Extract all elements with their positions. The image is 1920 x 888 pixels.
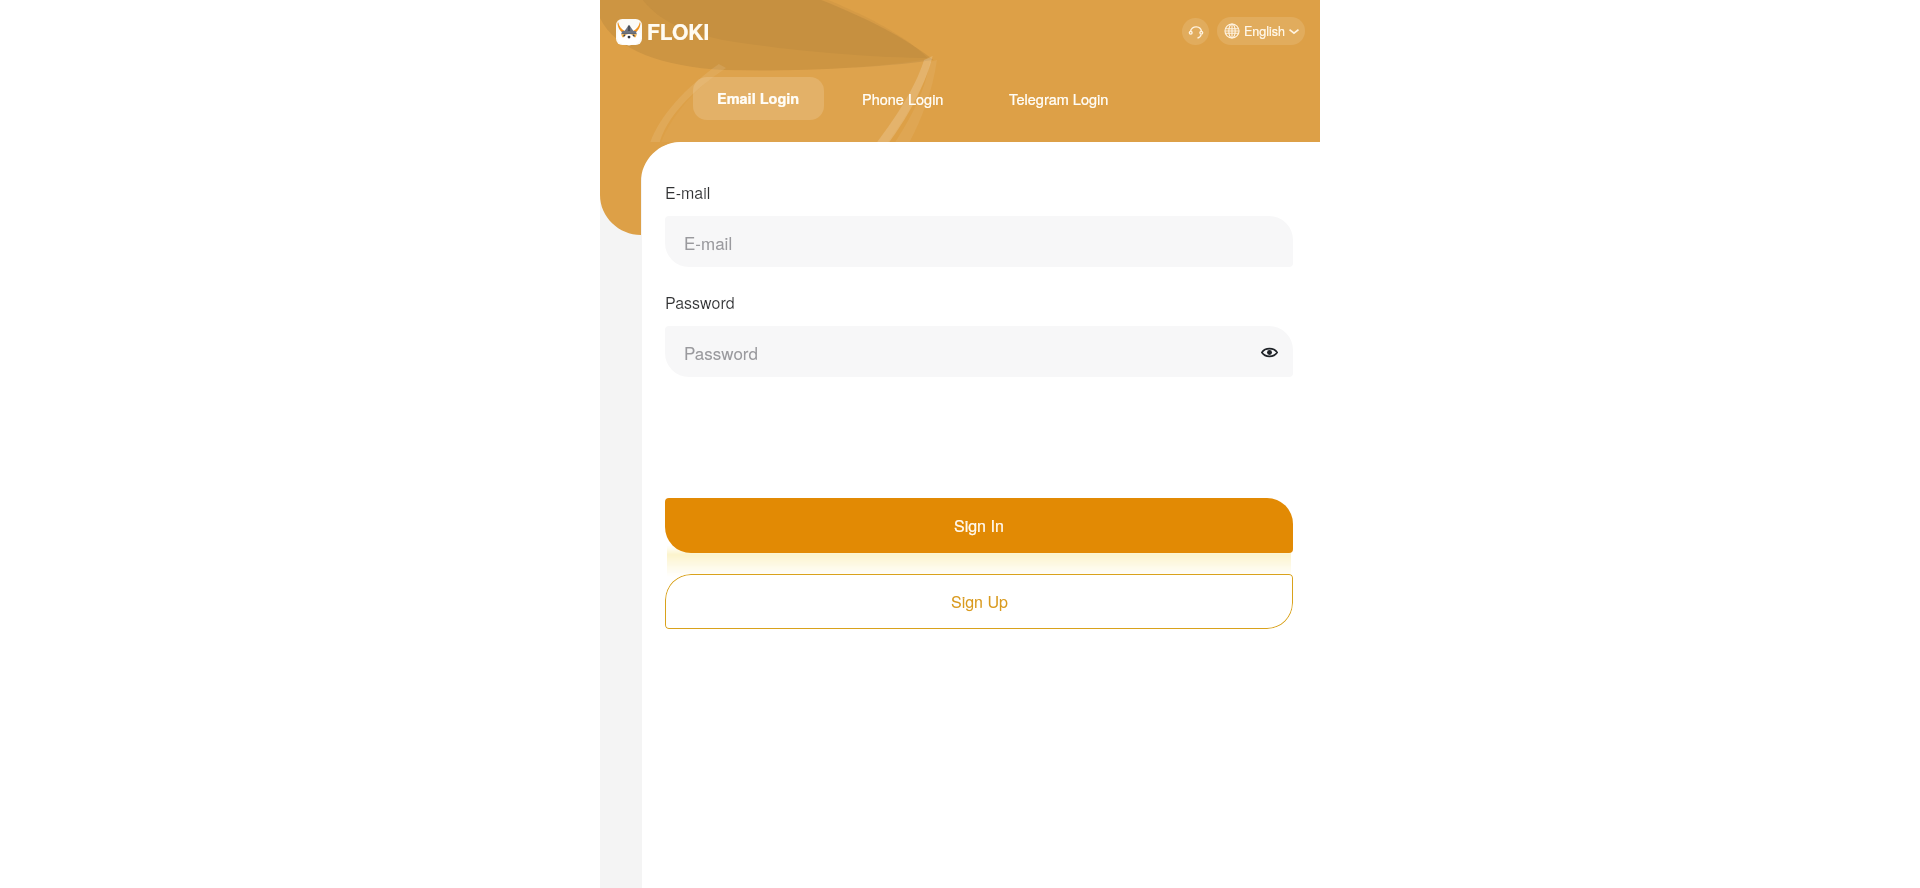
staticText: English bbox=[1244, 22, 1285, 40]
button[interactable]: Sign Up bbox=[665, 574, 1293, 629]
staticText: Password bbox=[684, 340, 758, 364]
staticText: FLOKI bbox=[647, 16, 710, 46]
staticText: Sign Up bbox=[951, 590, 1008, 613]
button[interactable]: Telegram Login bbox=[985, 77, 1133, 120]
staticText: Password bbox=[665, 291, 735, 314]
button[interactable]: Email Login bbox=[693, 77, 824, 120]
button[interactable]: Show password bbox=[1258, 341, 1280, 363]
staticText: Email Login bbox=[717, 88, 800, 109]
staticText: E-mail bbox=[684, 230, 733, 254]
button[interactable]: Password bbox=[665, 326, 1293, 377]
button[interactable]: E-mail bbox=[665, 216, 1293, 267]
button[interactable]: Phone Login bbox=[838, 77, 968, 120]
button[interactable]: English bbox=[1217, 17, 1305, 45]
staticText: Phone Login bbox=[862, 88, 944, 109]
staticText: Sign In bbox=[954, 514, 1004, 537]
button[interactable]: Customer support bbox=[1182, 18, 1209, 45]
staticText: Telegram Login bbox=[1009, 88, 1109, 109]
button[interactable]: Sign In bbox=[665, 498, 1293, 553]
staticText: E-mail bbox=[665, 181, 711, 204]
